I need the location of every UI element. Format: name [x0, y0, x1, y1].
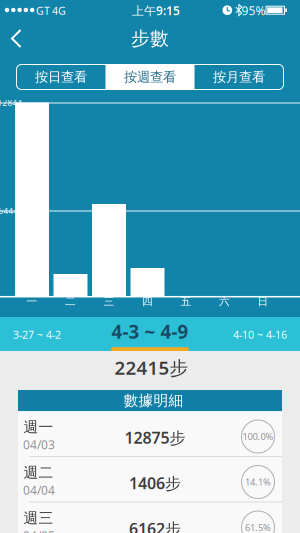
staticText: 按月查看 — [213, 69, 265, 85]
staticText: 04/05 — [23, 527, 55, 533]
staticText: 4-3 ~ 4-9 — [111, 319, 188, 344]
staticText: 14.1% — [245, 476, 271, 488]
staticText: 61.5% — [245, 521, 271, 533]
staticText: 95% — [241, 2, 265, 18]
staticText: 按週查看 — [124, 69, 176, 85]
staticText: 4-10 ~ 4-16 — [233, 327, 287, 342]
staticText: 日 — [257, 295, 268, 308]
button[interactable]: 按日查看 — [16, 64, 105, 89]
staticText: 六 — [219, 295, 230, 308]
staticText: 步數 — [131, 27, 169, 50]
staticText: 1406步 — [129, 472, 181, 494]
staticText: 五 — [180, 295, 191, 308]
staticText: 6162步 — [129, 518, 181, 533]
staticText: 04/03 — [23, 436, 55, 452]
staticText: 週三 — [23, 509, 53, 527]
staticText: 週一 — [23, 418, 53, 436]
staticText: GT — [36, 3, 50, 18]
staticText: 一 — [26, 295, 37, 308]
button[interactable]: 4-3 ~ 4-9 — [111, 317, 189, 351]
button[interactable]: 按月查看 — [194, 64, 283, 89]
button[interactable]: 週二 — [18, 457, 282, 501]
staticText: 上午9:15 — [132, 2, 180, 18]
button[interactable]: 週三 — [18, 502, 282, 533]
button[interactable]: 按週查看 — [105, 64, 194, 89]
staticText: 週二 — [23, 463, 53, 481]
button[interactable]: 3-27 ~ 4-2 — [0, 317, 74, 351]
staticText: 四 — [142, 295, 153, 308]
staticText: 12844 — [0, 98, 22, 108]
staticText: 6444 — [0, 206, 18, 216]
staticText: 12875步 — [124, 427, 185, 448]
staticText: 數據明細 — [123, 391, 183, 409]
staticText: 4G — [52, 3, 66, 18]
staticText: 100.0% — [242, 430, 273, 443]
staticText: 04/04 — [23, 482, 55, 498]
staticText: 三 — [103, 295, 114, 308]
staticText: 按日查看 — [35, 69, 87, 85]
staticText: 22415步 — [114, 355, 188, 380]
button[interactable]: 週一 — [18, 411, 282, 456]
staticText: 3-27 ~ 4-2 — [13, 327, 61, 342]
staticText: 二 — [65, 295, 76, 308]
button[interactable]: 4-10 ~ 4-16 — [220, 317, 300, 351]
button[interactable]: Back — [0, 20, 34, 58]
